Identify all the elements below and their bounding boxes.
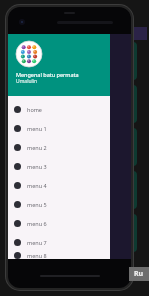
staticText: Ru [134,269,144,279]
button[interactable]: menu 8 [8,252,110,259]
button[interactable]: menu 5 [8,195,110,214]
staticText: menu 5 [27,201,47,208]
staticText: menu 7 [27,239,47,246]
button[interactable]: menu 6 [8,214,110,233]
button[interactable]: menu 7 [8,233,110,252]
staticText: menu 8 [27,252,47,259]
button[interactable]: Run [129,267,149,281]
staticText: menu 6 [27,220,47,227]
staticText: menu 1 [27,125,47,132]
button[interactable]: home [8,100,110,119]
staticText: menu 3 [27,163,47,170]
button[interactable]: menu 4 [8,176,110,195]
button[interactable]: menu 2 [8,138,110,157]
button[interactable]: menu 3 [8,157,110,176]
staticText: Mengenal batu permata [16,71,79,78]
button[interactable]: menu 1 [8,119,110,138]
staticText: menu 2 [27,144,47,151]
staticText: menu 4 [27,182,47,189]
staticText: Umalulin [16,78,38,85]
staticText: home [27,106,42,113]
